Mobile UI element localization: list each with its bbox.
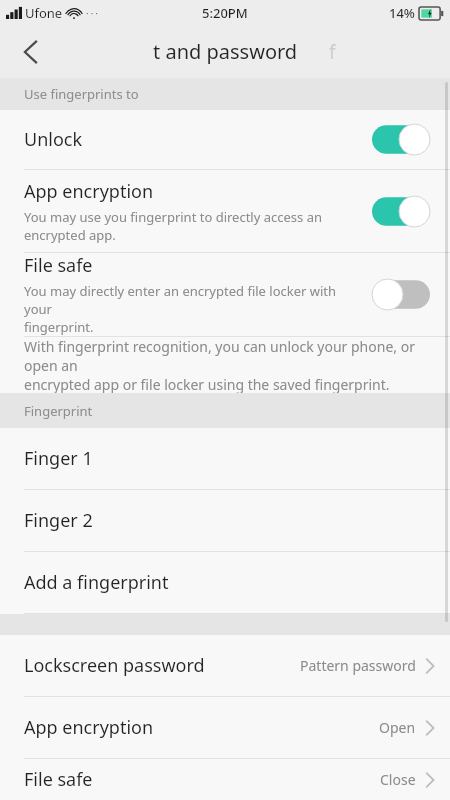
staticText: Finger 2 [24, 508, 93, 533]
button[interactable]: Finger 1 [0, 428, 450, 489]
staticText: App encryption [24, 715, 379, 740]
button[interactable]: Finger 2 [0, 490, 450, 551]
staticText: Open [379, 718, 416, 737]
staticText: Unlock [24, 127, 83, 152]
staticText: File safe [24, 253, 93, 278]
button[interactable]: App encryption [0, 170, 450, 252]
button[interactable]: On [372, 124, 430, 155]
staticText: File safe [24, 767, 380, 792]
staticText: With fingerprint recognition, you can un… [24, 337, 426, 393]
staticText: 5:20PM [202, 4, 248, 22]
staticText: 14% [389, 4, 415, 22]
staticText: Use fingerprints to [24, 85, 139, 103]
button[interactable]: App encryption [0, 697, 450, 758]
staticText: Ufone [25, 4, 63, 22]
staticText: You may directly enter an encrypted file… [24, 282, 364, 336]
staticText: Add a fingerprint [24, 570, 169, 595]
staticText: Close [380, 770, 416, 789]
staticText: t and password [153, 38, 298, 65]
button[interactable]: On [372, 196, 430, 227]
button[interactable]: Unlock [0, 110, 450, 169]
staticText: App encryption [24, 179, 154, 204]
button[interactable]: Back [0, 26, 62, 78]
staticText: f [329, 39, 336, 65]
button[interactable]: Off [372, 279, 430, 310]
staticText: Finger 1 [24, 446, 93, 471]
button[interactable]: File safe [0, 759, 450, 800]
staticText: Lockscreen password [24, 653, 300, 678]
button[interactable]: File safe [0, 253, 450, 336]
button[interactable]: Lockscreen password [0, 635, 450, 696]
staticText: Fingerprint [24, 402, 93, 420]
staticText: You may use you fingerprint to directly … [24, 208, 322, 244]
staticText: · · · [86, 7, 98, 19]
staticText: Pattern password [300, 656, 416, 675]
button[interactable]: Add a fingerprint [0, 552, 450, 613]
